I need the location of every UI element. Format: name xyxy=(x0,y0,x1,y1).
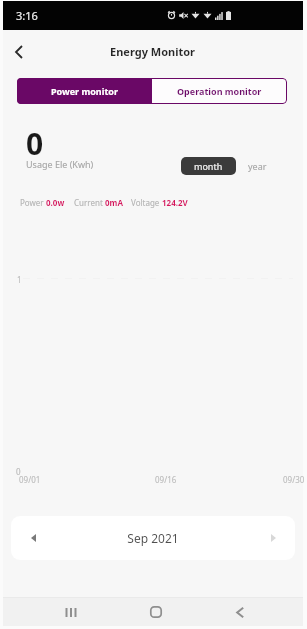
button[interactable]: Power monitor xyxy=(17,78,152,104)
staticText: year xyxy=(248,160,267,172)
staticText: 09/30 xyxy=(283,474,305,485)
button[interactable]: month xyxy=(181,157,236,175)
button[interactable]: Home xyxy=(128,598,184,626)
staticText: Usage Ele (Kwh) xyxy=(26,158,94,170)
staticText: Sep 2021 xyxy=(55,530,251,546)
staticText: 09/01 xyxy=(19,474,41,485)
button[interactable]: year xyxy=(236,157,278,175)
staticText: Operation monitor xyxy=(177,85,262,97)
button[interactable]: Operation monitor xyxy=(152,78,287,104)
staticText: 0 xyxy=(16,466,21,477)
staticText: Power monitor xyxy=(51,85,118,97)
staticText: Energy Monitor xyxy=(110,44,196,59)
button[interactable]: Next month xyxy=(251,516,295,560)
button[interactable]: Previous month xyxy=(11,516,55,560)
button[interactable]: Back xyxy=(4,37,34,67)
staticText: 1 xyxy=(17,274,22,285)
staticText: 09/16 xyxy=(155,474,177,485)
staticText: month xyxy=(194,160,223,172)
staticText: Current xyxy=(74,197,103,208)
button[interactable]: Back xyxy=(212,598,268,626)
button[interactable]: Recent apps xyxy=(43,598,99,626)
staticText: 0.0w xyxy=(46,197,65,208)
staticText: Voltage xyxy=(131,197,160,208)
staticText: 0mA xyxy=(105,197,123,208)
staticText: 3:16 xyxy=(16,8,38,23)
staticText: 124.2V xyxy=(162,197,188,208)
staticText: 0 xyxy=(26,123,44,164)
staticText: Power xyxy=(20,197,44,208)
